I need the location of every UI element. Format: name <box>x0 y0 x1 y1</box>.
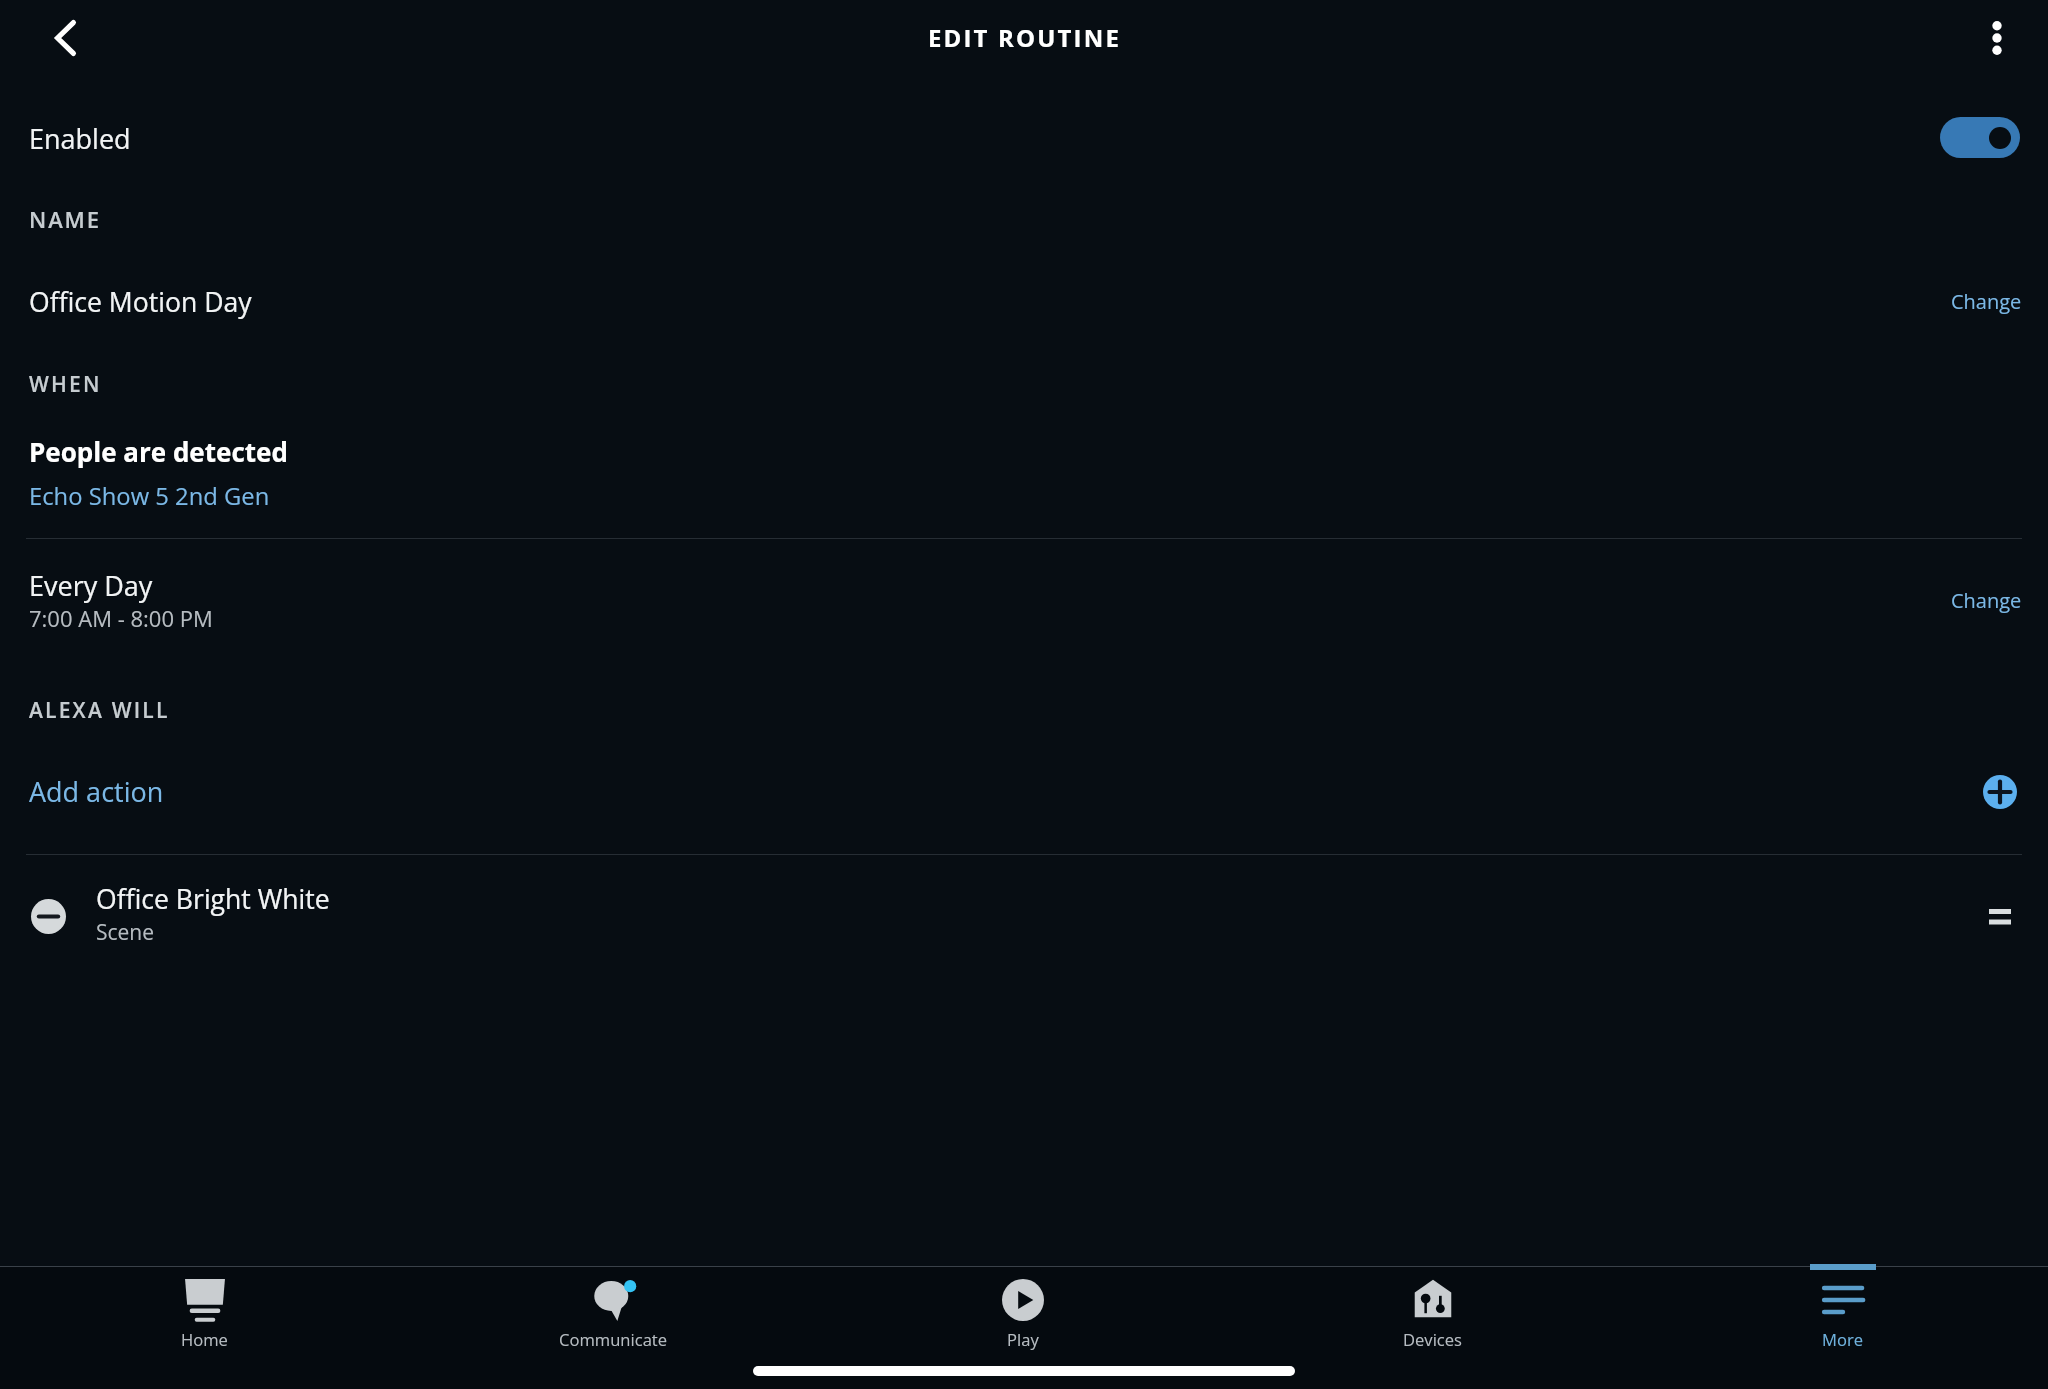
button[interactable] <box>0 552 2048 650</box>
button[interactable] <box>0 752 2048 834</box>
button[interactable]: Add action <box>1983 775 2017 809</box>
staticText: Scene <box>96 918 155 947</box>
staticText: Play <box>1007 1328 1039 1351</box>
staticText: EDIT ROUTINE <box>928 21 1121 54</box>
button[interactable] <box>0 96 2048 176</box>
button[interactable]: More options <box>1964 5 2030 71</box>
button[interactable] <box>0 418 2048 530</box>
button[interactable]: Play <box>818 1267 1228 1389</box>
staticText: Office Bright White <box>96 881 330 917</box>
button[interactable]: Devices <box>1228 1267 1638 1389</box>
button[interactable]: Back <box>32 5 98 71</box>
button[interactable] <box>0 262 2048 338</box>
staticText: Home <box>181 1328 228 1351</box>
staticText: Every Day <box>29 567 153 604</box>
button[interactable]: Enabled toggle, on <box>1940 117 2020 158</box>
staticText: Enabled <box>29 120 131 157</box>
staticText: Communicate <box>559 1328 668 1351</box>
button[interactable]: More <box>1638 1267 2048 1389</box>
staticText: Change <box>1951 288 2022 315</box>
staticText: Change <box>1951 587 2022 614</box>
button[interactable]: Communicate <box>409 1267 818 1389</box>
button[interactable]: Home <box>0 1267 409 1389</box>
staticText: 7:00 AM - 8:00 PM <box>29 603 213 633</box>
staticText: Echo Show 5 2nd Gen <box>29 480 270 512</box>
staticText: More <box>1822 1328 1864 1351</box>
staticText: NAME <box>29 204 101 234</box>
staticText: Add action <box>29 773 164 810</box>
button[interactable]: Reorder <box>1977 894 2023 940</box>
staticText: People are detected <box>29 434 288 469</box>
staticText: WHEN <box>29 370 102 399</box>
staticText: ALEXA WILL <box>29 696 170 725</box>
button[interactable]: Remove action <box>21 889 76 944</box>
button[interactable] <box>0 872 2048 964</box>
staticText: Devices <box>1403 1328 1463 1351</box>
staticText: Office Motion Day <box>29 284 252 320</box>
